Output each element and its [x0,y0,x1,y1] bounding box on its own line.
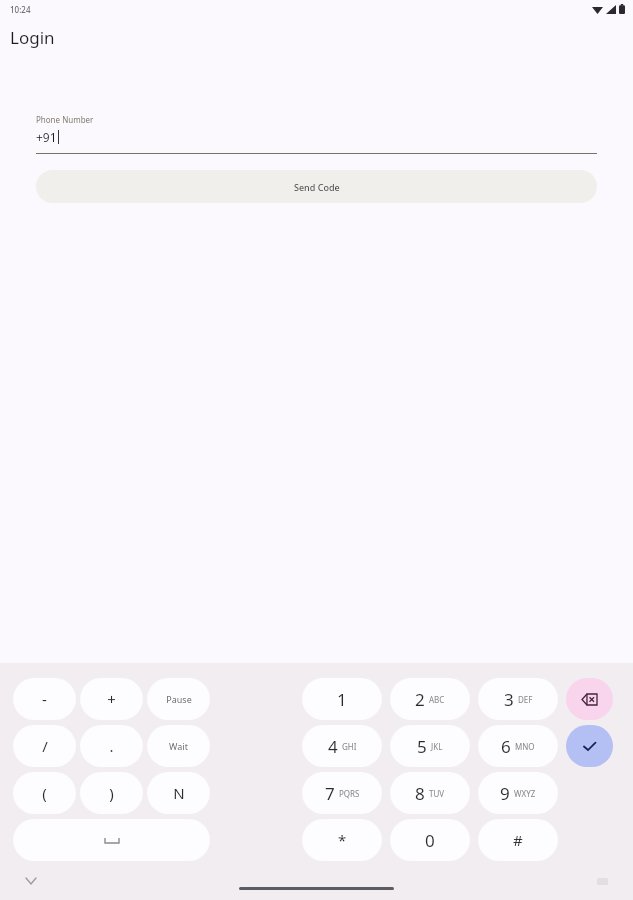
staticText: JKL [431,741,443,752]
button[interactable]: 4 [302,725,382,767]
button[interactable]: 6 [478,725,558,767]
staticText: GHI [342,741,357,752]
button[interactable]: 5 [390,725,470,767]
staticText: 9 [500,782,510,805]
staticText: ABC [429,694,445,705]
button[interactable]: Pause [147,678,210,720]
staticText: PQRS [339,788,360,799]
staticText: N [173,783,185,803]
staticText: Wait [169,740,188,752]
staticText: MNO [515,741,535,752]
staticText: / [42,736,48,756]
staticText: 6 [501,735,511,758]
button[interactable]: + [80,678,143,720]
staticText: # [513,830,523,850]
staticText: 1 [337,688,347,711]
button[interactable]: - [13,678,76,720]
staticText: * [338,830,347,850]
staticText: Pause [166,693,192,705]
button[interactable]: Enter [566,725,613,767]
staticText: WXYZ [514,788,536,799]
button[interactable]: Space [13,819,210,861]
button[interactable]: N [147,772,210,814]
button[interactable]: 9 [478,772,558,814]
staticText: ) [109,783,114,803]
staticText: . [109,736,114,756]
button[interactable]: Backspace [566,678,613,720]
button[interactable]: / [13,725,76,767]
staticText: 4 [328,735,338,758]
button[interactable]: Wait [147,725,210,767]
staticText: 0 [425,829,435,852]
button[interactable]: Send Code [36,170,597,203]
button[interactable]: 1 [302,678,382,720]
staticText: 2 [415,688,425,711]
staticText: 8 [415,782,425,805]
staticText: DEF [518,694,533,705]
staticText: +91 [36,129,57,145]
button[interactable]: 7 [302,772,382,814]
staticText: 10:24 [10,4,31,15]
staticText: Login [10,26,55,49]
button[interactable]: * [302,819,382,861]
staticText: + [107,689,116,709]
button[interactable]: # [478,819,558,861]
button[interactable]: 0 [390,819,470,861]
staticText: - [42,689,47,709]
staticText: ( [42,783,47,803]
staticText: Phone Number [36,114,94,125]
staticText: 7 [325,782,335,805]
button[interactable]: ( [13,772,76,814]
button[interactable]: . [80,725,143,767]
staticText: 5 [417,735,427,758]
staticText: 3 [504,688,514,711]
button[interactable]: 2 [390,678,470,720]
staticText: TUV [429,788,445,799]
staticText: Send Code [294,181,340,193]
button[interactable]: 3 [478,678,558,720]
button[interactable]: Keyboard settings [589,868,615,894]
button[interactable]: 8 [390,772,470,814]
button[interactable]: Hide keyboard [16,868,46,894]
button[interactable]: ) [80,772,143,814]
